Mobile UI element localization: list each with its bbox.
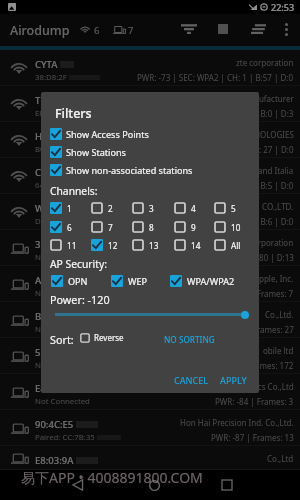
button[interactable]: E8:03:9A [0, 374, 300, 410]
staticText: 10 [231, 222, 241, 233]
staticText: Paired: CC:7B:35 [35, 432, 95, 443]
staticText: Not Connected [35, 360, 90, 371]
staticText: 9 [191, 222, 196, 233]
staticText: and Italia [258, 165, 294, 176]
button[interactable]: CANCEL [170, 369, 213, 391]
button[interactable]: A4:77:33 [0, 266, 300, 302]
button[interactable]: 8 [132, 221, 154, 233]
button[interactable]: 6 [50, 221, 72, 233]
button[interactable]: 2 [91, 202, 113, 214]
staticText: 12 [108, 240, 118, 251]
staticText: All [231, 240, 241, 251]
button[interactable]: More options [274, 11, 298, 47]
button[interactable]: TP-LINK [0, 86, 300, 122]
button[interactable]: WiFi [0, 194, 300, 230]
staticText: Show Stations [66, 146, 126, 158]
staticText: 5C:F9:38 [35, 346, 73, 359]
button[interactable]: HOL [0, 122, 300, 158]
staticText: zte corporation [236, 57, 294, 68]
staticText: Channels: [50, 184, 98, 198]
staticText: D8:0D:17 [35, 216, 69, 227]
button[interactable]: E8:03:9A [0, 446, 300, 470]
staticText: B8:27:EB [35, 310, 75, 323]
staticText: WEP [128, 275, 148, 287]
staticText: PWR: -84 | Frames: 3 [215, 396, 294, 407]
button[interactable]: B8:27:EB [0, 302, 300, 338]
staticText: CYTA [35, 58, 58, 71]
button[interactable]: Cyta [0, 158, 300, 194]
button[interactable]: 11 [50, 239, 77, 251]
button[interactable]: All [214, 239, 241, 251]
staticText: manufacturer [242, 93, 294, 104]
button[interactable]: 7 [91, 221, 113, 233]
button[interactable]: 5C:F9:38 [0, 338, 300, 374]
button[interactable]: Stop capture [210, 11, 236, 47]
staticText: 14 [191, 240, 201, 251]
staticText: Airodump [10, 22, 70, 39]
button[interactable]: Home [140, 470, 168, 500]
button[interactable]: WPA/WPA2 [170, 275, 235, 287]
button[interactable]: APPLY [216, 369, 251, 391]
staticText: 1 [67, 203, 72, 214]
button[interactable]: 1 [50, 202, 72, 214]
staticText: PWR: -80 | SEC: WPA2 | CH: 1 | B:0 | D:3 [142, 108, 294, 119]
staticText: Show Access Points [66, 128, 149, 140]
staticText: WiFi [35, 202, 55, 215]
staticText: 6 [94, 24, 100, 37]
button[interactable]: 14 [174, 239, 201, 251]
button[interactable]: WEP [111, 275, 148, 287]
staticText: 3 [149, 203, 154, 214]
staticText: 11 [67, 240, 77, 251]
button[interactable]: 9 [174, 221, 196, 233]
staticText: Not Connected [35, 468, 90, 479]
button[interactable]: NO SORTING [162, 332, 217, 347]
staticText: Filters [55, 105, 92, 122]
button[interactable]: 5 [214, 202, 236, 214]
staticText: AP Security: [50, 257, 107, 271]
staticText: E8:03:9A [35, 382, 74, 395]
staticText: PWR: -87 | Frames: 13 [211, 432, 294, 443]
button[interactable]: 3C:CD:93 [0, 230, 300, 266]
button[interactable]: 12 [91, 239, 118, 251]
staticText: TECHNOLOGIES [234, 129, 294, 140]
button[interactable]: Show Access Points [50, 128, 149, 140]
button[interactable]: Show non-associated stations [50, 164, 193, 176]
staticText: Samsung Electronics Co.,Ltd [188, 381, 294, 392]
staticText: 6 [67, 222, 72, 233]
staticText: 64:6E:EA [35, 180, 67, 191]
staticText: OPN [68, 275, 88, 287]
button[interactable]: OPN [51, 275, 88, 287]
button[interactable]: 4 [174, 202, 196, 214]
button[interactable]: Sort [245, 11, 271, 47]
staticText: 3C:CD:93 [35, 238, 76, 251]
staticText: CANCEL [174, 374, 209, 386]
button[interactable]: Power threshold [237, 307, 253, 323]
button[interactable]: 10 [214, 221, 241, 233]
staticText: pple, Inc. [259, 273, 294, 284]
button[interactable]: Recents [213, 470, 241, 500]
button[interactable]: Filter [176, 11, 202, 47]
staticText: 7 [108, 222, 113, 233]
button[interactable]: 3 [132, 202, 154, 214]
staticText: 易下APP • 4008891800.COM [21, 468, 203, 487]
staticText: NO SORTING [164, 334, 215, 345]
staticText: HOL [35, 130, 55, 143]
staticText: PWR: -84 | Frames: 27 [211, 324, 294, 335]
staticText: E8:DE:27 [35, 108, 67, 119]
staticText: APPLY [220, 374, 247, 386]
button[interactable]: Reverse [80, 332, 124, 343]
button[interactable]: Back [64, 470, 92, 500]
staticText: WPA/WPA2 [187, 275, 235, 287]
button[interactable]: 13 [132, 239, 159, 251]
staticText: Reverse [94, 332, 124, 343]
staticText: corporation [249, 237, 294, 248]
staticText: PWR: -84 | Frames: 19 [211, 468, 294, 470]
button[interactable]: Show Stations [50, 146, 126, 158]
staticText: 5 [231, 203, 236, 214]
staticText: PWR: -81 | SEC: WPA2 | CH: 5 | B:5 | D:0 [142, 180, 294, 191]
button[interactable]: 90:4C:E5 [0, 410, 300, 446]
staticText: 2 [108, 203, 113, 214]
staticText: Not Connected [35, 396, 90, 407]
staticText: 90:4C:E5 [35, 418, 74, 431]
button[interactable]: CYTA [0, 50, 300, 86]
